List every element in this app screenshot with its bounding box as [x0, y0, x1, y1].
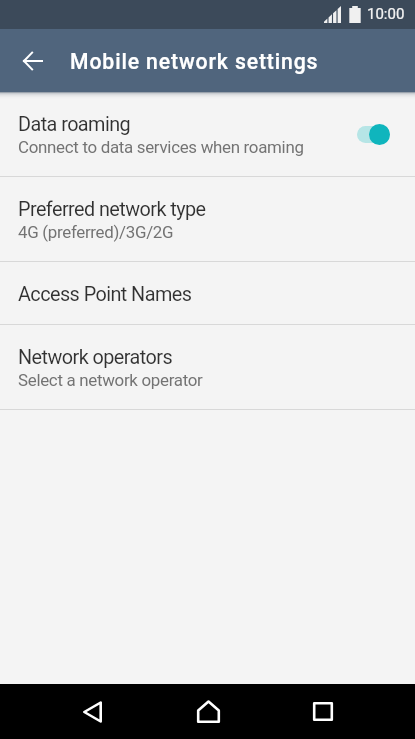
staticText: Connect to data services when roaming	[18, 137, 304, 157]
button[interactable]: Data roaming toggle	[355, 114, 401, 154]
button[interactable]: Navigate up	[0, 29, 64, 92]
staticText: Preferred network type	[18, 198, 206, 221]
staticText: Access Point Names	[18, 283, 192, 306]
staticText: Select a network operator	[18, 370, 203, 390]
button[interactable]: Preferred network type	[0, 177, 415, 261]
staticText: Data roaming	[18, 113, 131, 136]
button[interactable]: Back	[50, 684, 134, 739]
button[interactable]: Network operators	[0, 325, 415, 409]
staticText: 4G (preferred)/3G/2G	[18, 222, 174, 242]
button[interactable]: Recent apps	[281, 684, 365, 739]
button[interactable]: Home	[166, 684, 250, 739]
button[interactable]: Access Point Names	[0, 262, 415, 324]
staticText: Mobile network settings	[70, 49, 319, 74]
button[interactable]: Data roaming	[0, 92, 415, 176]
staticText: 10:00	[367, 5, 405, 23]
staticText: Network operators	[18, 346, 173, 369]
